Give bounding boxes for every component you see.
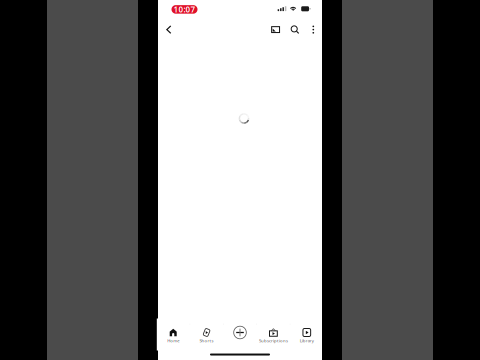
button[interactable]: More options — [305, 20, 321, 39]
button[interactable]: Shorts — [190, 318, 223, 350]
button[interactable]: Subscriptions — [257, 318, 290, 350]
staticText: Subscriptions — [259, 338, 288, 343]
button[interactable]: Home — [157, 318, 190, 350]
staticText: Shorts — [200, 338, 214, 343]
button[interactable]: Cast — [267, 20, 285, 39]
staticText: Library — [300, 338, 314, 343]
button[interactable]: Back — [160, 20, 177, 39]
staticText: 10:07 — [173, 4, 195, 15]
button[interactable] — [224, 318, 256, 350]
staticText: Home — [167, 338, 179, 343]
button[interactable]: Library — [290, 318, 323, 350]
button[interactable]: Search — [286, 20, 304, 39]
